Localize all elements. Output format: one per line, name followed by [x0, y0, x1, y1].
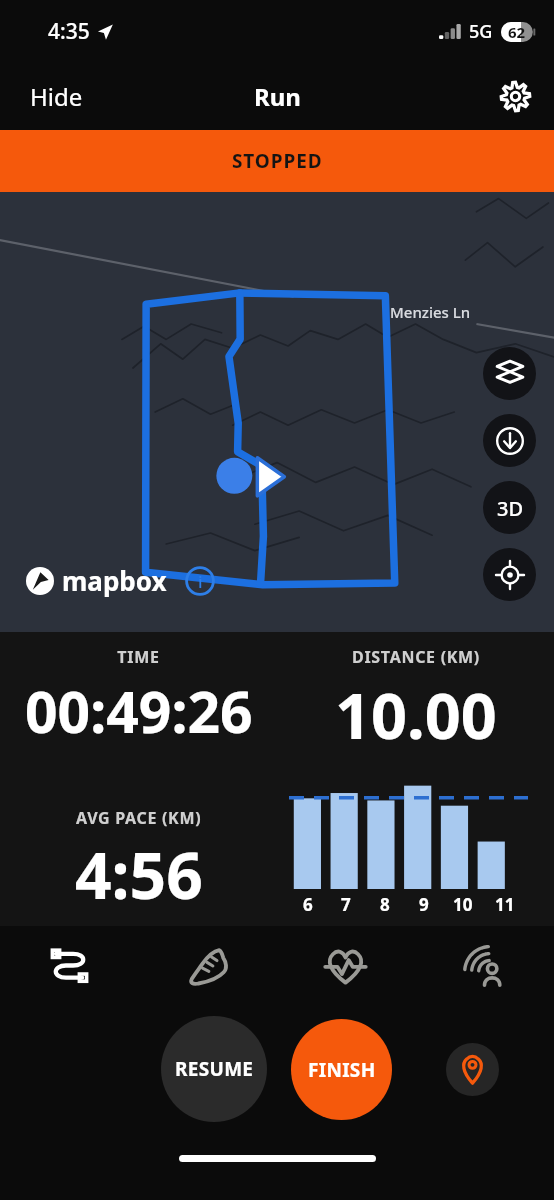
button[interactable]: 3D view [483, 481, 536, 534]
button[interactable]: Show map [446, 1043, 499, 1096]
staticText: Menzies Ln [390, 302, 471, 322]
button[interactable]: FINISH [291, 1019, 392, 1120]
staticText: 62 [508, 22, 526, 42]
staticText: 6 [303, 893, 313, 916]
staticText: Hide [30, 80, 83, 113]
staticText: DISTANCE (KM) [352, 646, 480, 668]
button[interactable]: Heart rate [276, 926, 415, 1004]
staticText: FINISH [308, 1057, 376, 1083]
staticText: 00:49:26 [25, 672, 253, 750]
staticText: 11 [495, 893, 515, 916]
button[interactable]: Map layers [483, 347, 536, 400]
button[interactable]: Settings [490, 71, 540, 121]
staticText: 4:56 [75, 831, 203, 918]
button[interactable]: Recenter [483, 548, 536, 601]
staticText: 4:35 [48, 17, 90, 46]
staticText: 8 [380, 893, 390, 916]
staticText: 3D [497, 495, 524, 522]
button[interactable]: Route [0, 926, 138, 1004]
staticText: 10.00 [335, 672, 497, 758]
button[interactable]: Map info [185, 566, 215, 596]
button[interactable]: Live tracking [415, 926, 554, 1004]
staticText: 7 [341, 893, 351, 916]
button[interactable]: Download map [483, 414, 536, 467]
staticText: Run [254, 80, 301, 113]
staticText: 9 [419, 893, 429, 916]
staticText: STOPPED [232, 148, 323, 174]
staticText: AVG PACE (KM) [76, 807, 202, 829]
staticText: i [198, 570, 203, 593]
staticText: 10 [453, 893, 473, 916]
staticText: 5G [469, 19, 493, 44]
button[interactable]: Hide [0, 68, 113, 125]
button[interactable]: RESUME [161, 1016, 267, 1122]
staticText: TIME [117, 646, 160, 668]
staticText: mapbox [62, 563, 167, 598]
staticText: RESUME [175, 1056, 254, 1082]
button[interactable]: Shoes [138, 926, 276, 1004]
